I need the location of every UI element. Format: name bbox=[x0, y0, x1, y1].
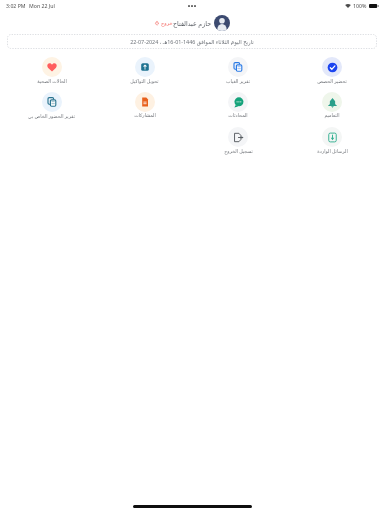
button[interactable]: تقرير الحضور الخاص بي bbox=[5, 89, 98, 124]
staticText: تقرير الغياب bbox=[226, 78, 250, 84]
button[interactable]: تحويل التواكيل bbox=[98, 54, 191, 89]
staticText: 3:02 PM bbox=[6, 2, 26, 9]
button[interactable]: تاريخ اليوم الثلاثاء الموافق 1446-01-16ه… bbox=[7, 34, 377, 49]
button[interactable]: التعاميم bbox=[285, 89, 379, 124]
staticText: 100% bbox=[353, 2, 367, 9]
button[interactable]: خروج bbox=[154, 18, 174, 28]
staticText: التعاميم bbox=[324, 113, 340, 119]
button[interactable]: تقرير الغياب bbox=[191, 54, 285, 89]
staticText: المشاركات bbox=[134, 113, 156, 119]
staticText: خروج bbox=[161, 20, 173, 26]
button[interactable]: الحالات الصحية bbox=[5, 54, 98, 89]
staticText: تاريخ اليوم الثلاثاء الموافق 1446-01-16ه… bbox=[130, 38, 254, 45]
button[interactable]: تسجيل الخروج bbox=[191, 124, 285, 159]
button[interactable]: المشاركات bbox=[98, 89, 191, 124]
staticText: تحضير الحصص bbox=[317, 78, 347, 84]
staticText: Mon 22 Jul bbox=[29, 2, 55, 9]
staticText: تحويل التواكيل bbox=[130, 78, 159, 84]
staticText: حازم عبدالفتاح bbox=[173, 19, 212, 28]
staticText: تسجيل الخروج bbox=[224, 148, 253, 154]
button[interactable]: المحادثات bbox=[191, 89, 285, 124]
button[interactable]: تحضير الحصص bbox=[285, 54, 379, 89]
button[interactable]: Profile bbox=[214, 15, 230, 31]
staticText: المحادثات bbox=[228, 113, 248, 119]
staticText: الحالات الصحية bbox=[37, 78, 67, 84]
staticText: تقرير الحضور الخاص بي bbox=[28, 113, 75, 119]
staticText: الرسائل الواردة bbox=[317, 148, 348, 154]
button[interactable]: الرسائل الواردة bbox=[285, 124, 379, 159]
